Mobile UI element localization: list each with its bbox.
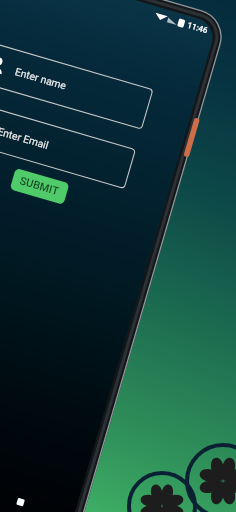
button[interactable]: Sign-up form phone mockup [0,0,236,512]
